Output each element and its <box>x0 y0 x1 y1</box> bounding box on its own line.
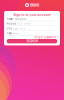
staticText: 555 0100 <box>17 22 31 25</box>
staticText: City <box>7 27 12 30</box>
button[interactable]: Phone <box>7 22 57 26</box>
staticText: Phone <box>7 22 16 25</box>
button[interactable]: Pass <box>7 31 57 36</box>
staticText: Pass <box>7 32 12 35</box>
staticText: name@mail <box>15 17 27 21</box>
staticText: New York <box>13 27 25 30</box>
button[interactable]: SIGN IN <box>7 39 57 43</box>
button[interactable]: Email <box>7 17 57 22</box>
staticText: Brand <box>30 3 39 7</box>
button[interactable]: City <box>7 26 57 31</box>
staticText: •••••• <box>13 32 19 35</box>
staticText: Email <box>7 17 14 21</box>
button[interactable]: Forgot password? <box>7 36 57 39</box>
staticText: Sign in to your account <box>13 13 50 17</box>
staticText: SIGN IN <box>26 39 37 43</box>
staticText: Forgot password? <box>34 36 57 39</box>
